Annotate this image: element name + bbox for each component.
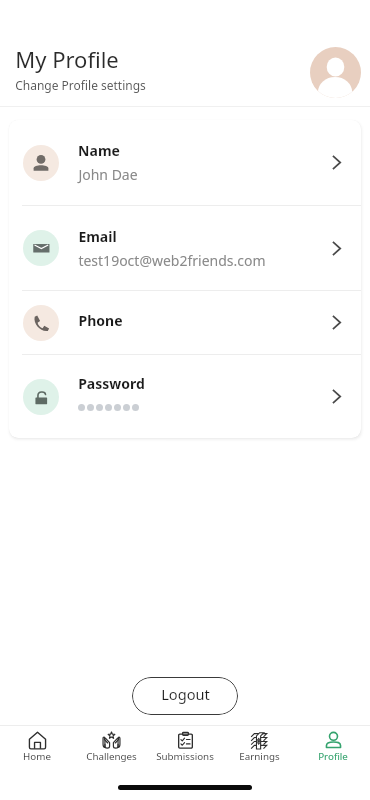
staticText: My Profile	[15, 44, 119, 74]
staticText: Earnings	[239, 750, 280, 763]
staticText: Challenges	[86, 750, 137, 763]
button[interactable]: Password	[9, 355, 361, 438]
button[interactable]: Home	[0, 725, 74, 785]
staticText: John Dae	[78, 165, 138, 184]
button[interactable]: Challenges	[74, 725, 148, 785]
button[interactable]: Name	[9, 120, 361, 205]
button[interactable]: Profile	[296, 725, 370, 785]
staticText: Profile	[318, 750, 348, 763]
staticText: Home	[23, 750, 51, 763]
staticText: Name	[78, 141, 120, 160]
button[interactable]: Phone	[9, 291, 361, 354]
staticText: Phone	[78, 311, 123, 330]
button[interactable]: Profile avatar	[310, 47, 361, 98]
staticText: Submissions	[156, 750, 214, 763]
button[interactable]: Earnings	[222, 725, 296, 785]
staticText: Email	[78, 227, 117, 246]
staticText: Change Profile settings	[15, 77, 146, 93]
staticText: Password	[78, 374, 145, 393]
button[interactable]: Submissions	[148, 725, 222, 785]
button[interactable]: Email	[9, 206, 361, 290]
button[interactable]: Logout	[132, 677, 238, 715]
staticText: test19oct@web2friends.com	[78, 251, 266, 270]
staticText: Logout	[161, 684, 210, 704]
